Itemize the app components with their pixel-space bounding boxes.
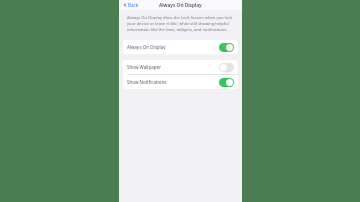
button[interactable]: Toggle Always On Display bbox=[219, 43, 234, 52]
button[interactable]: Always On Display bbox=[123, 40, 238, 54]
staticText: Always On Display bbox=[159, 2, 202, 9]
staticText: Show Wallpaper bbox=[127, 64, 161, 70]
staticText: Always On Display bbox=[127, 44, 166, 50]
staticText: Back bbox=[128, 2, 139, 8]
button[interactable]: Toggle Show Notifications bbox=[219, 78, 234, 87]
button[interactable]: Show Wallpaper bbox=[123, 60, 238, 74]
staticText: Always On Display dims the Lock Screen w… bbox=[127, 15, 235, 33]
button[interactable]: Toggle Show Wallpaper bbox=[219, 63, 234, 72]
staticText: Show Notifications bbox=[127, 79, 167, 85]
button[interactable]: Back bbox=[122, 1, 140, 9]
button[interactable]: Show Notifications bbox=[123, 75, 238, 89]
